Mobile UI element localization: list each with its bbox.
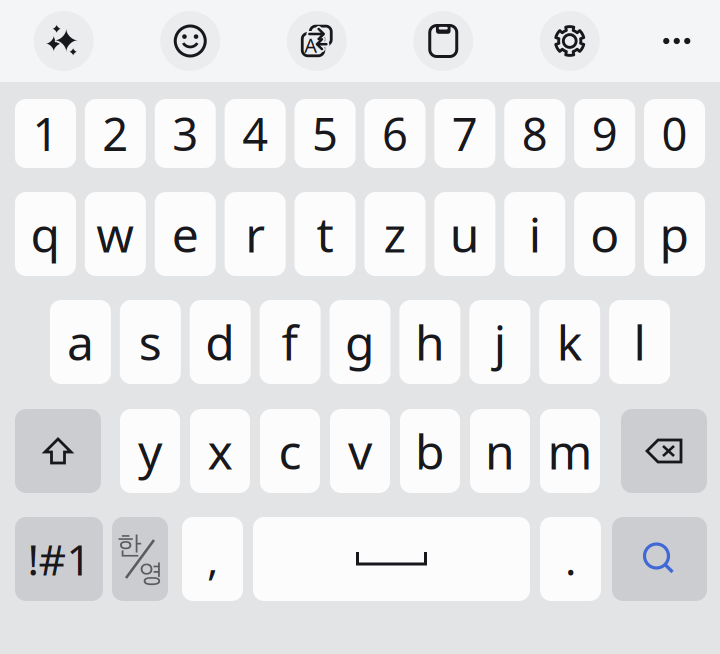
- button[interactable]: c: [260, 409, 320, 493]
- button[interactable]: a: [50, 300, 111, 384]
- staticText: i: [529, 202, 541, 266]
- staticText: y: [138, 419, 162, 483]
- button[interactable]: Switch language: [112, 517, 168, 601]
- button[interactable]: 4: [225, 99, 286, 168]
- staticText: 한: [116, 529, 141, 560]
- staticText: 8: [522, 103, 548, 164]
- staticText: e: [172, 202, 199, 266]
- button[interactable]: More options: [655, 0, 698, 82]
- button[interactable]: w: [85, 192, 146, 276]
- staticText: x: [207, 419, 232, 483]
- staticText: p: [659, 202, 689, 266]
- button[interactable]: o: [574, 192, 635, 276]
- button[interactable]: Keyboard settings: [529, 0, 611, 82]
- button[interactable]: .: [540, 517, 601, 601]
- button[interactable]: 8: [504, 99, 565, 168]
- staticText: 5: [312, 103, 338, 164]
- button[interactable]: z: [364, 192, 425, 276]
- staticText: n: [485, 419, 515, 483]
- staticText: u: [450, 202, 480, 266]
- button[interactable]: b: [400, 409, 460, 493]
- staticText: 7: [452, 103, 478, 164]
- button[interactable]: 7: [434, 99, 495, 168]
- staticText: k: [557, 310, 583, 374]
- button[interactable]: ,: [182, 517, 243, 601]
- button[interactable]: Space: [253, 517, 530, 601]
- staticText: z: [383, 202, 406, 266]
- staticText: 영: [138, 557, 163, 588]
- button[interactable]: 6: [364, 99, 425, 168]
- button[interactable]: Search: [612, 517, 707, 601]
- button[interactable]: k: [539, 300, 600, 384]
- staticText: A: [304, 32, 317, 58]
- button[interactable]: AI writing assist: [23, 0, 105, 82]
- staticText: r: [245, 202, 265, 266]
- staticText: o: [590, 202, 619, 266]
- staticText: b: [415, 419, 445, 483]
- staticText: s: [139, 310, 162, 374]
- staticText: h: [415, 310, 445, 374]
- staticText: g: [345, 310, 375, 374]
- staticText: 3: [172, 103, 198, 164]
- button[interactable]: 1: [15, 99, 76, 168]
- button[interactable]: 3: [155, 99, 216, 168]
- button[interactable]: m: [540, 409, 600, 493]
- button[interactable]: Shift: [15, 409, 101, 493]
- staticText: 2: [102, 103, 128, 164]
- button[interactable]: 9: [574, 99, 635, 168]
- button[interactable]: y: [120, 409, 180, 493]
- staticText: c: [278, 419, 301, 483]
- button[interactable]: f: [260, 300, 321, 384]
- staticText: d: [205, 310, 235, 374]
- staticText: a: [67, 310, 94, 374]
- button[interactable]: 5: [295, 99, 356, 168]
- staticText: 9: [592, 103, 618, 164]
- button[interactable]: v: [330, 409, 390, 493]
- button[interactable]: 0: [644, 99, 705, 168]
- button[interactable]: 2: [85, 99, 146, 168]
- staticText: 0: [661, 103, 687, 164]
- button[interactable]: l: [609, 300, 670, 384]
- staticText: q: [30, 202, 60, 266]
- button[interactable]: e: [155, 192, 216, 276]
- button[interactable]: r: [225, 192, 286, 276]
- staticText: j: [494, 310, 506, 374]
- staticText: .: [565, 531, 576, 587]
- button[interactable]: !#1: [15, 517, 103, 601]
- button[interactable]: d: [190, 300, 251, 384]
- staticText: 4: [242, 103, 268, 164]
- staticText: f: [282, 310, 299, 374]
- staticText: 1: [32, 103, 58, 164]
- button[interactable]: j: [469, 300, 530, 384]
- staticText: ,: [207, 531, 218, 587]
- staticText: l: [634, 310, 646, 374]
- button[interactable]: i: [504, 192, 565, 276]
- button[interactable]: Backspace: [621, 409, 707, 493]
- button[interactable]: p: [644, 192, 705, 276]
- button[interactable]: h: [399, 300, 460, 384]
- staticText: m: [547, 419, 592, 483]
- button[interactable]: g: [329, 300, 390, 384]
- button[interactable]: u: [434, 192, 495, 276]
- button[interactable]: Clipboard: [402, 0, 484, 82]
- staticText: t: [317, 202, 334, 266]
- button[interactable]: Translate: [276, 0, 358, 82]
- button[interactable]: s: [120, 300, 181, 384]
- button[interactable]: Emoji: [149, 0, 231, 82]
- button[interactable]: x: [190, 409, 250, 493]
- button[interactable]: t: [295, 192, 356, 276]
- staticText: w: [96, 202, 134, 266]
- button[interactable]: n: [470, 409, 530, 493]
- button[interactable]: q: [15, 192, 76, 276]
- staticText: !#1: [27, 531, 90, 587]
- staticText: 6: [382, 103, 408, 164]
- staticText: v: [348, 419, 372, 483]
